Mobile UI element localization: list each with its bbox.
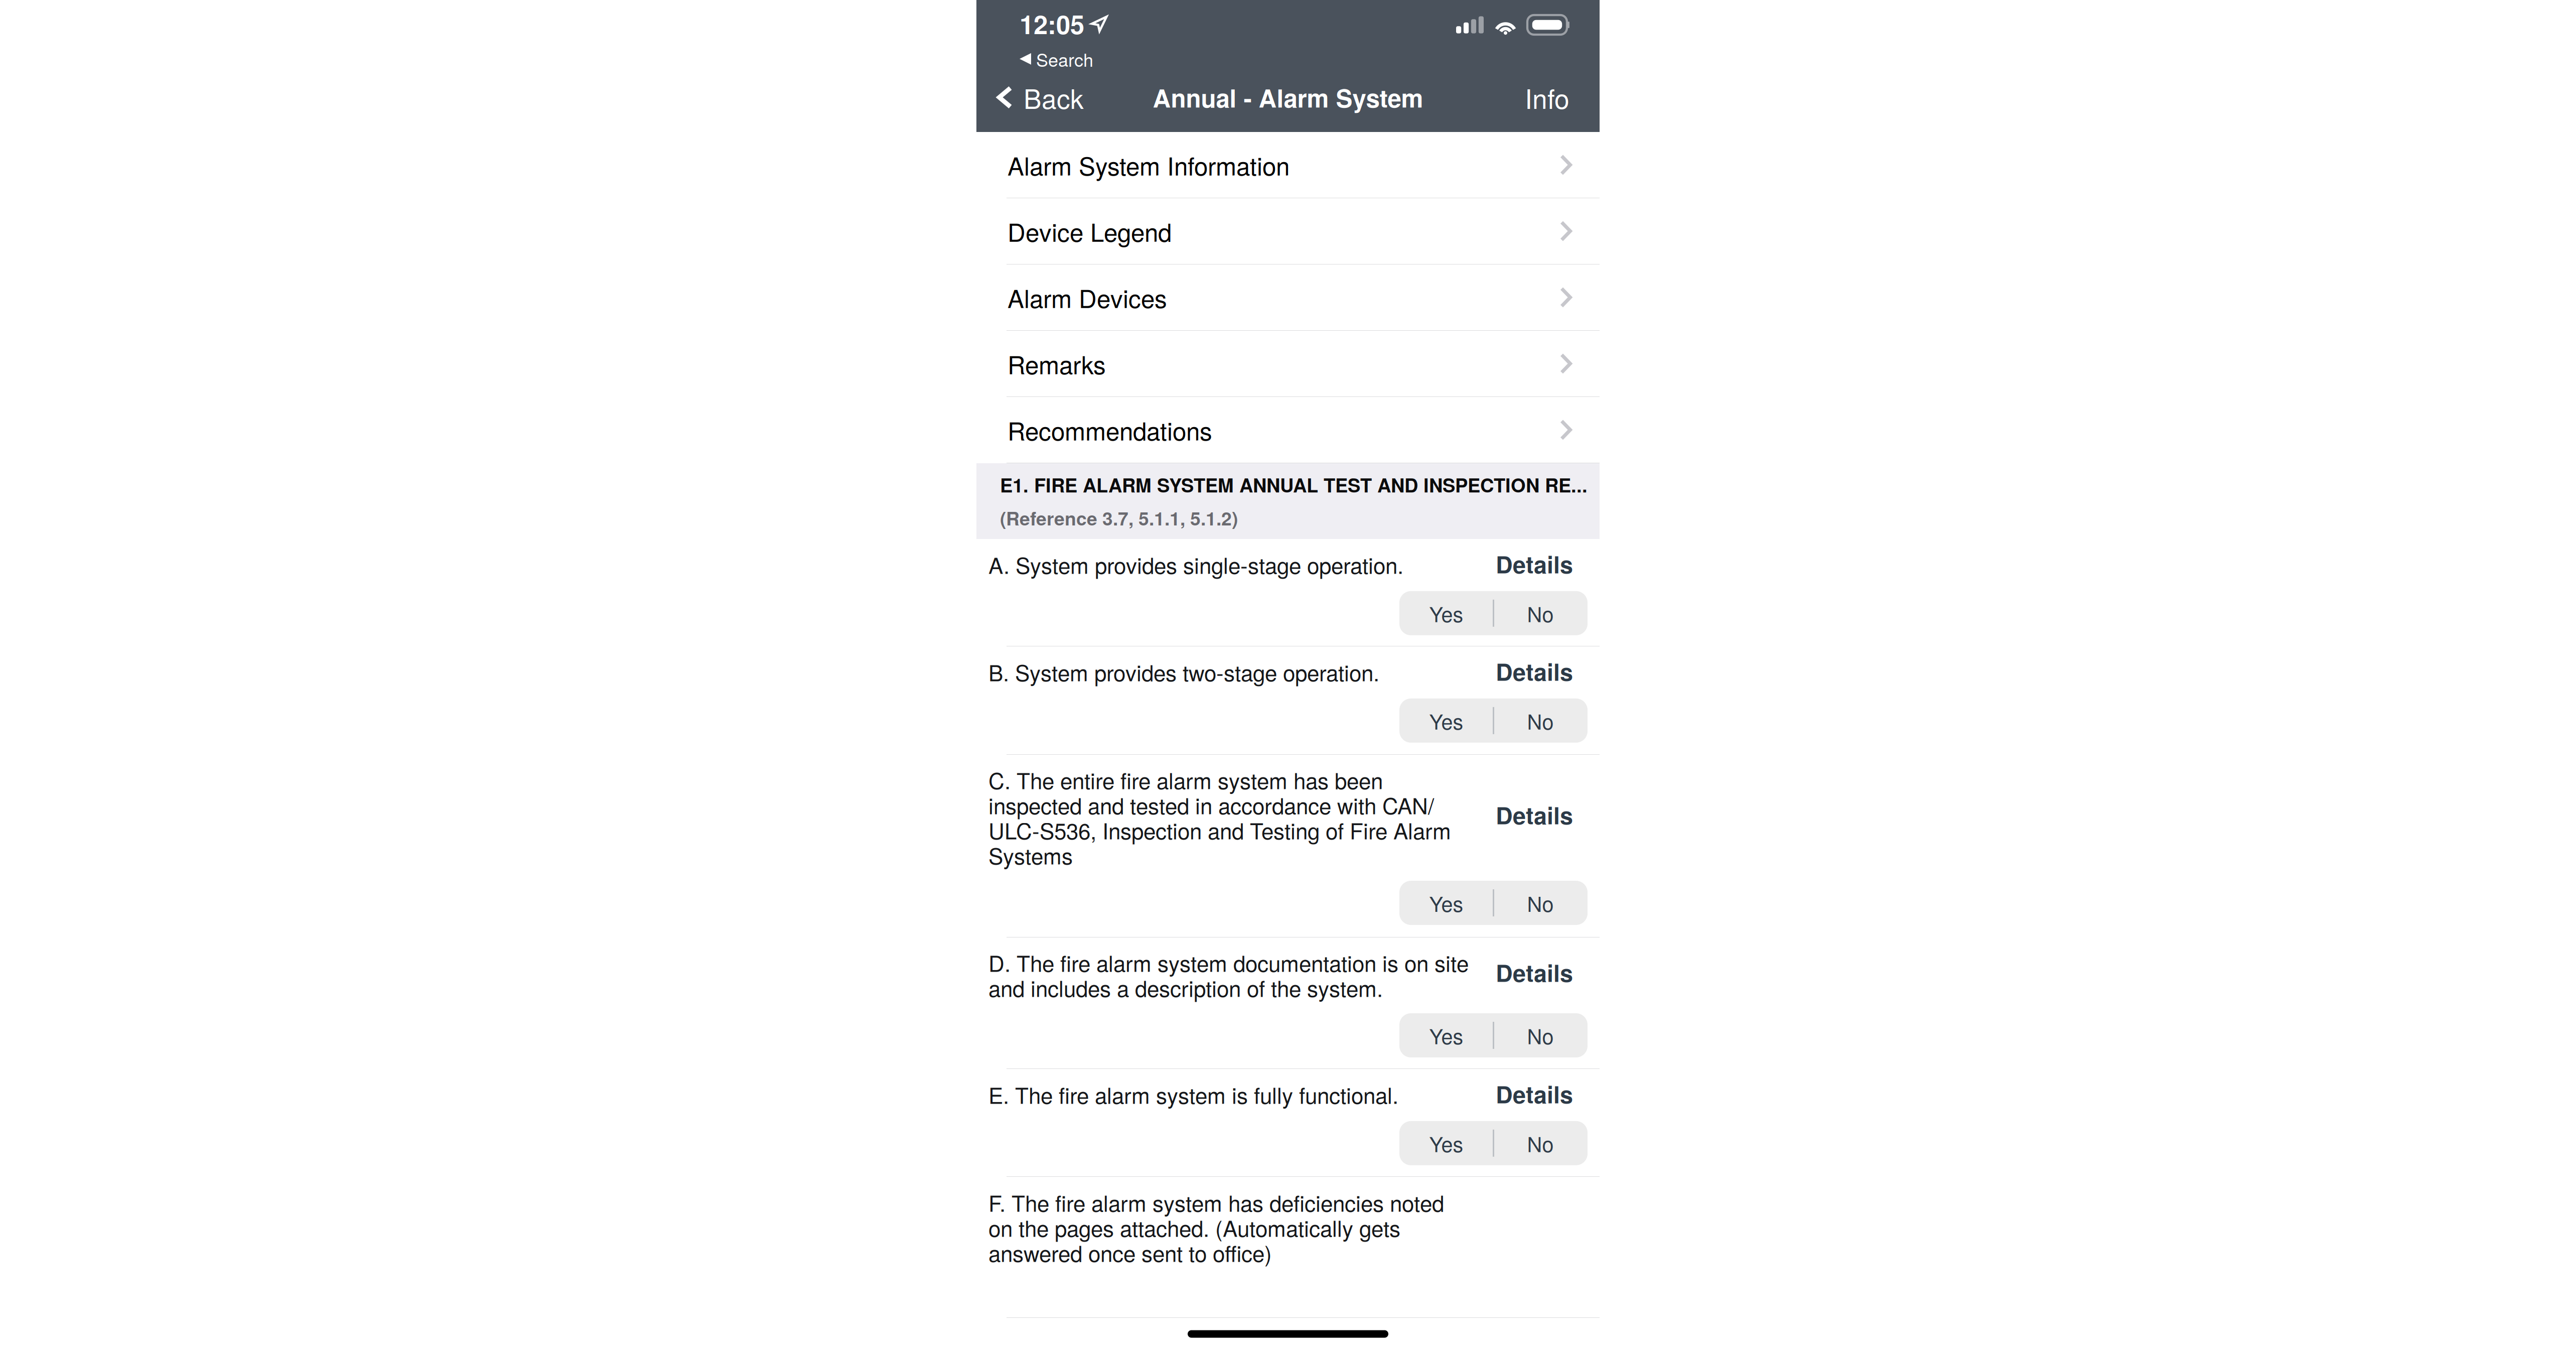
button[interactable]: Details xyxy=(1496,937,1600,989)
staticText: B. System provides two-stage operation. xyxy=(988,656,1379,688)
button[interactable]: Yes xyxy=(1399,881,1493,925)
button[interactable]: Alarm Devices xyxy=(976,264,1600,331)
button[interactable]: Details xyxy=(1496,755,1600,831)
button[interactable]: Details xyxy=(1496,646,1600,688)
staticText: Recommendations xyxy=(1008,412,1212,448)
staticText: Alarm System Information xyxy=(1008,147,1290,183)
staticText: Details xyxy=(1496,956,1573,989)
staticText: A. System provides single-stage operatio… xyxy=(988,549,1403,580)
staticText: E. The fire alarm system is fully functi… xyxy=(988,1078,1398,1110)
button[interactable]: Remarks xyxy=(976,331,1600,397)
button[interactable]: Yes xyxy=(1399,1013,1493,1057)
button[interactable]: Yes xyxy=(1399,1121,1493,1165)
button[interactable]: No xyxy=(1493,1013,1588,1057)
staticText: No xyxy=(1527,888,1554,918)
staticText: No xyxy=(1527,1020,1554,1050)
staticText: Remarks xyxy=(1008,346,1106,381)
button[interactable]: No xyxy=(1493,881,1588,925)
staticText: Yes xyxy=(1429,706,1463,735)
staticText: Details xyxy=(1496,547,1573,581)
button[interactable]: Search xyxy=(1020,42,1093,72)
staticText: Search xyxy=(1036,46,1093,72)
staticText: No xyxy=(1527,598,1554,628)
staticText: Details xyxy=(1496,654,1573,688)
staticText: E1. FIRE ALARM SYSTEM ANNUAL TEST AND IN… xyxy=(1000,471,1588,498)
staticText: Device Legend xyxy=(1008,213,1172,249)
staticText: Yes xyxy=(1429,1020,1463,1050)
staticText: F. The fire alarm system has deficiencie… xyxy=(988,1186,1444,1268)
button[interactable]: Info xyxy=(1510,73,1600,121)
staticText: Yes xyxy=(1429,1128,1463,1158)
button[interactable]: Alarm System Information xyxy=(976,132,1600,198)
button[interactable]: Recommendations xyxy=(976,397,1600,463)
staticText: No xyxy=(1527,1128,1554,1158)
button[interactable]: Yes xyxy=(1399,698,1493,743)
staticText: Annual - Alarm System xyxy=(1153,80,1423,115)
button[interactable]: Back xyxy=(976,73,1099,121)
staticText: Details xyxy=(1496,1077,1573,1111)
button[interactable]: No xyxy=(1493,1121,1588,1165)
staticText: (Reference 3.7, 5.1.1, 5.1.2) xyxy=(1000,504,1238,531)
staticText: No xyxy=(1527,706,1554,735)
staticText: Details xyxy=(1496,798,1573,831)
button[interactable]: Details xyxy=(1496,1069,1600,1111)
button[interactable]: No xyxy=(1493,698,1588,743)
button[interactable]: Yes xyxy=(1399,591,1493,635)
staticText: Back xyxy=(1024,78,1084,117)
staticText: 12:05 xyxy=(1020,6,1084,42)
staticText: Info xyxy=(1525,78,1569,117)
button[interactable]: Details xyxy=(1496,539,1600,581)
staticText: Yes xyxy=(1429,888,1463,918)
staticText: C. The entire fire alarm system has been… xyxy=(988,764,1451,871)
staticText: Alarm Devices xyxy=(1008,280,1167,315)
staticText: D. The fire alarm system documentation i… xyxy=(988,947,1469,1003)
button[interactable]: Device Legend xyxy=(976,198,1600,264)
button[interactable]: No xyxy=(1493,591,1588,635)
staticText: Yes xyxy=(1429,598,1463,628)
